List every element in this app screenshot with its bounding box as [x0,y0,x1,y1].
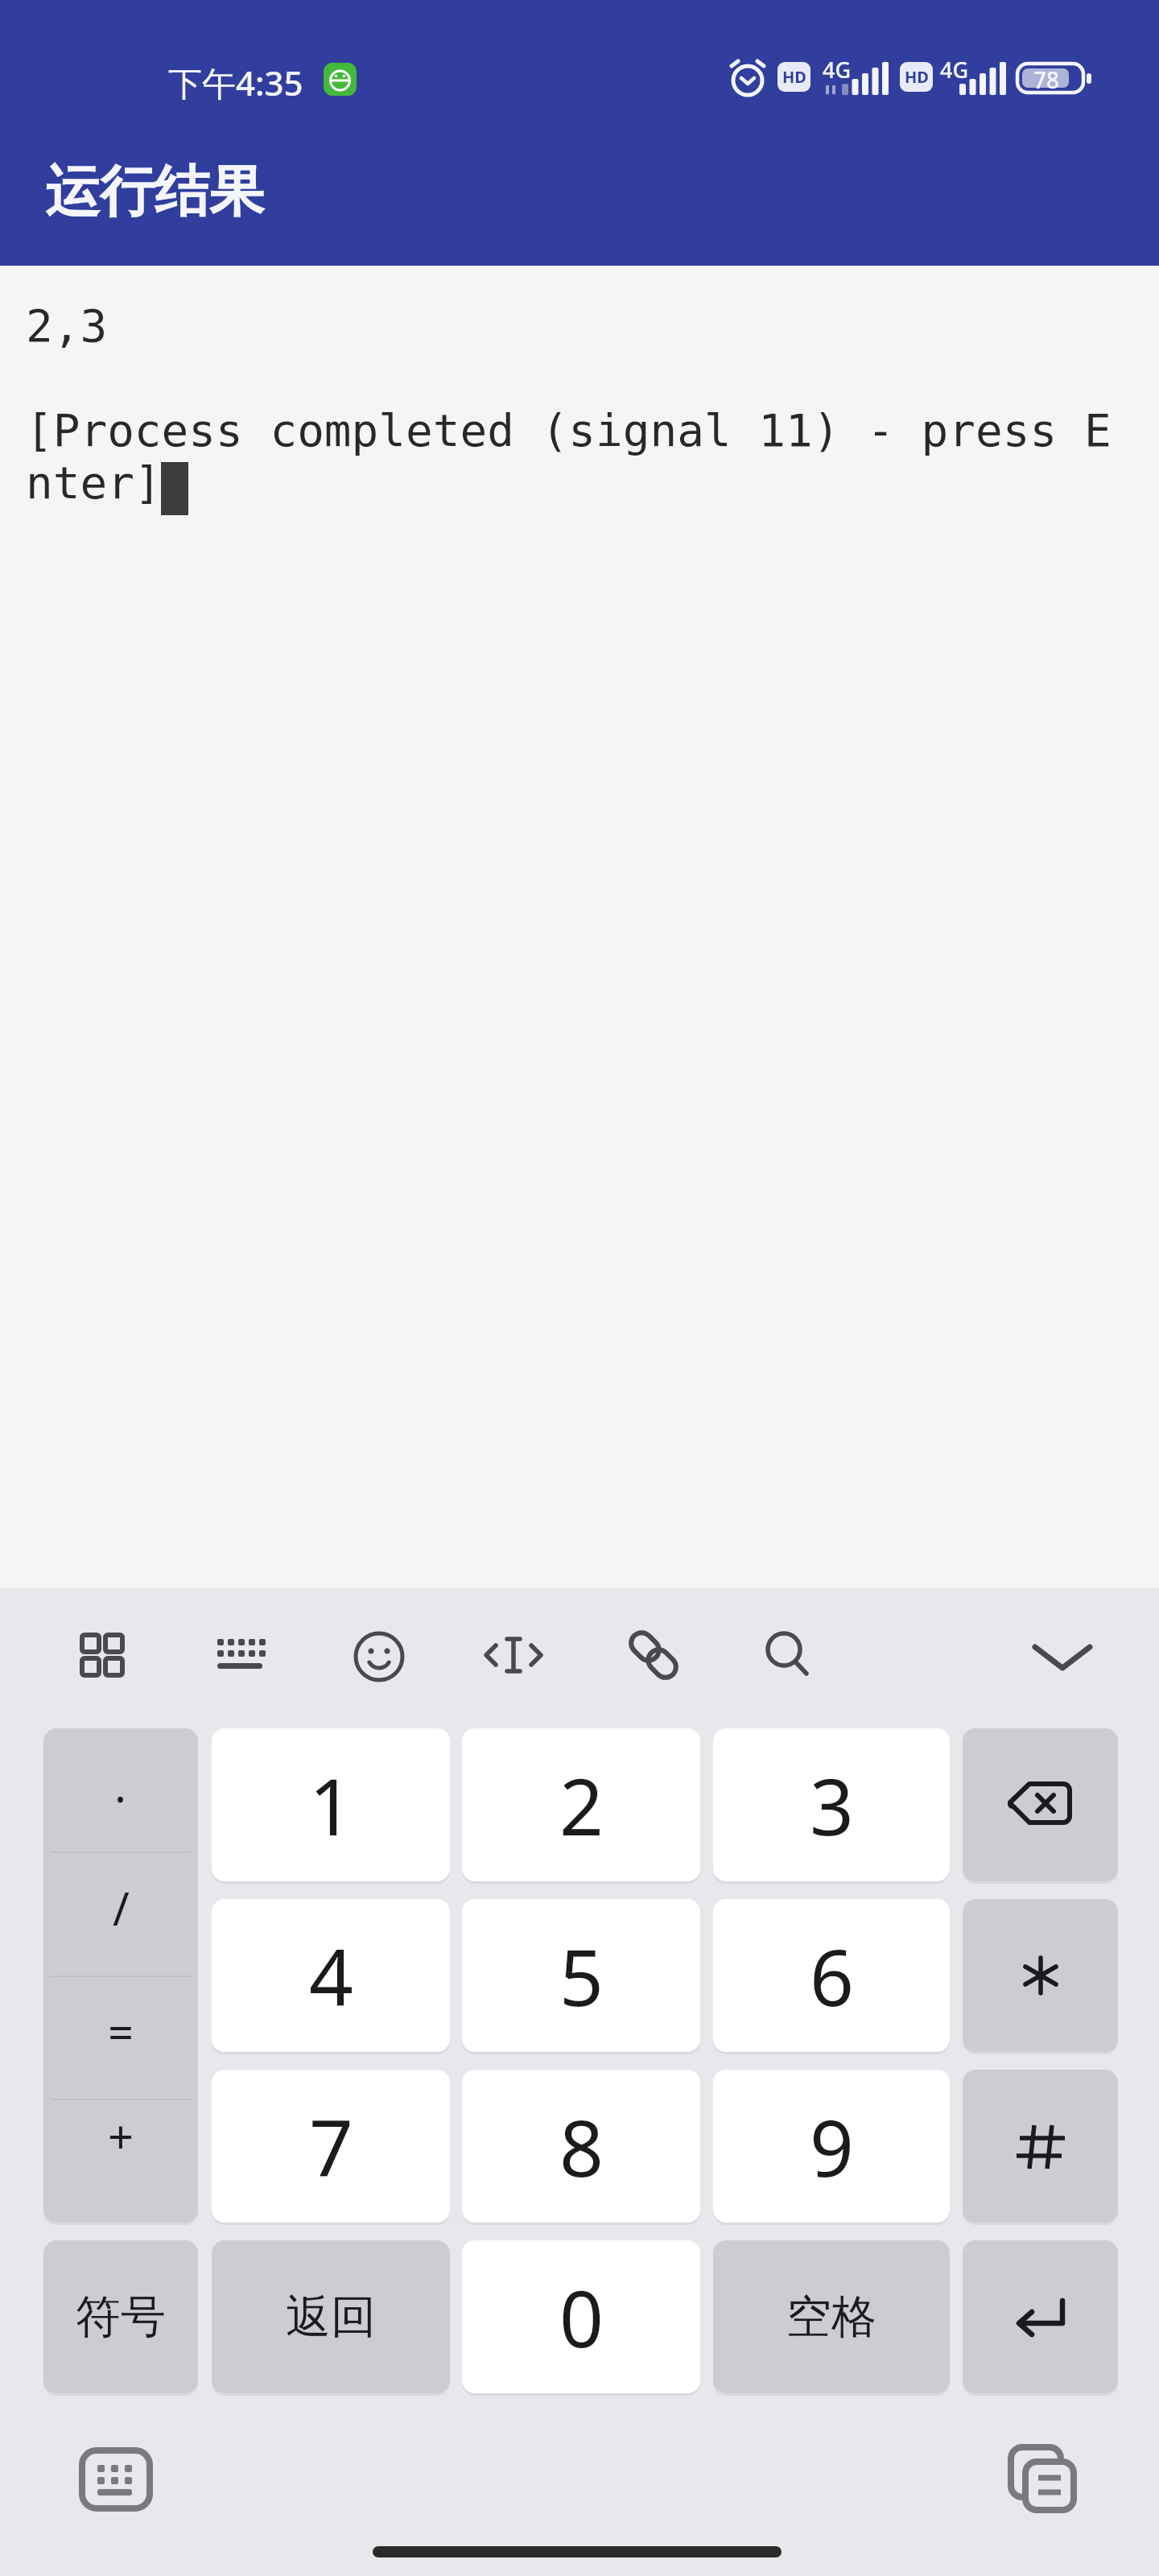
button[interactable]: 4 [212,1899,450,2052]
button[interactable] [1030,1637,1095,1676]
button[interactable]: 2 [462,1728,700,1881]
staticText: 78 [1033,64,1060,95]
staticText: HD [905,66,929,88]
staticText: 2,3 [Process completed (signal 11) - pre… [26,299,1112,509]
staticText: 空格 [786,2289,876,2346]
staticText: / [113,1877,130,1938]
staticText: HD [782,66,806,88]
button[interactable]: 返回 [212,2240,450,2393]
staticText: 4G [940,55,969,85]
button[interactable] [963,1899,1118,2052]
staticText: 0 [559,2264,604,2370]
staticText: + [108,2105,134,2166]
staticText: 7 [309,2094,353,2199]
staticText: 4 [309,1923,353,2029]
button[interactable]: 符号 [43,2240,198,2393]
button[interactable]: 7 [212,2070,450,2223]
button[interactable] [761,1629,813,1680]
staticText: 返回 [286,2289,376,2346]
staticText: 6 [810,1923,854,2029]
staticText: 3 [810,1752,854,1858]
button[interactable] [963,2240,1118,2393]
button[interactable] [80,2447,152,2512]
button[interactable]: 0 [462,2240,700,2393]
staticText: 下午4:35 [168,60,303,105]
staticText: 4G [823,55,852,85]
button[interactable]: 6 [713,1899,950,2052]
staticText: 1 [309,1752,353,1858]
staticText: 8 [559,2094,604,2199]
button[interactable]: 8 [462,2070,700,2223]
staticText: 9 [810,2094,854,2199]
button[interactable] [485,1629,542,1681]
button[interactable]: 9 [713,2070,950,2223]
staticText: = [108,2000,134,2062]
button[interactable]: 1 [212,1728,450,1881]
button[interactable] [963,2070,1118,2223]
button[interactable] [963,1728,1118,1881]
button[interactable] [1008,2444,1080,2516]
button[interactable]: 5 [462,1899,700,2052]
button[interactable] [214,1629,266,1681]
button[interactable]: . [43,1728,198,2223]
staticText: 符号 [76,2289,166,2346]
staticText: 5 [559,1923,604,2029]
button[interactable]: 空格 [713,2240,950,2393]
button[interactable]: 3 [713,1728,950,1881]
button[interactable] [353,1631,405,1682]
button[interactable] [76,1629,128,1681]
staticText: . [114,1754,127,1815]
button[interactable] [625,1626,683,1684]
staticText: 2 [559,1752,604,1858]
staticText: 运行结果 [45,158,264,227]
